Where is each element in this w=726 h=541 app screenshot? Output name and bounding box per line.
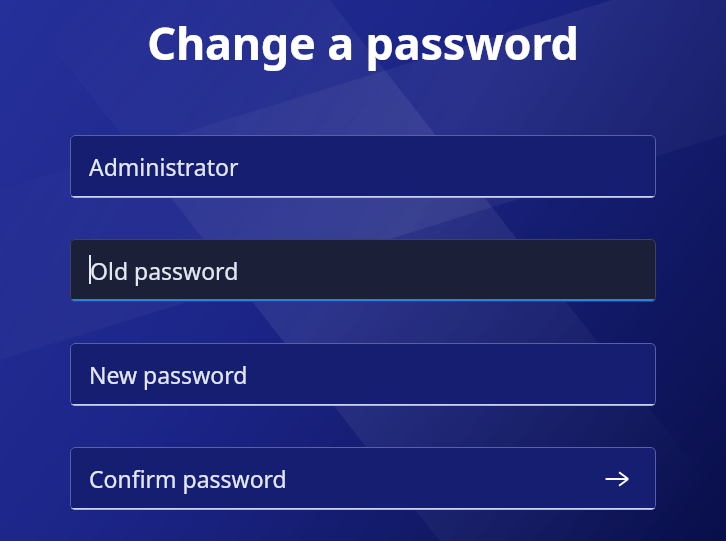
staticText: Confirm password	[89, 463, 287, 494]
button[interactable]: Submit	[598, 460, 636, 498]
button[interactable]: Confirm password	[70, 447, 656, 510]
staticText: Administrator	[89, 151, 239, 182]
staticText: Old password	[90, 255, 239, 286]
button[interactable]: Old password	[70, 239, 656, 302]
button[interactable]: New password	[70, 343, 656, 406]
staticText: New password	[89, 359, 248, 390]
button[interactable]: Administrator	[70, 135, 656, 198]
staticText: Change a password	[0, 12, 726, 73]
